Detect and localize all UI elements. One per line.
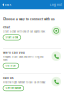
staticText: We'll call you xyxy=(3,51,25,54)
button[interactable]: Log out xyxy=(50,2,62,7)
staticText: Back xyxy=(5,3,11,6)
button[interactable]: See the number xyxy=(3,86,24,91)
staticText: Request a call back and we'll ring you s… xyxy=(3,55,43,61)
staticText: See the number xyxy=(5,87,21,90)
staticText: Start a chat with one of our agents now. xyxy=(3,30,46,33)
staticText: Find the right number to call us on toda… xyxy=(3,81,46,84)
button[interactable]: Get a call xyxy=(3,63,19,68)
staticText: Log out xyxy=(50,3,62,6)
button[interactable]: Start a chat xyxy=(3,35,21,40)
staticText: Chat xyxy=(3,26,10,29)
staticText: Call us xyxy=(3,76,13,80)
staticText: Get a call xyxy=(5,64,16,67)
staticText: Start a chat xyxy=(5,36,18,39)
button[interactable]: Back xyxy=(2,2,11,7)
staticText: Choose a way to connect with us xyxy=(3,17,55,21)
